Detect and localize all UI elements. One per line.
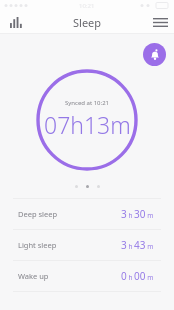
staticText: 07h13m — [44, 109, 131, 140]
staticText: 10:21 — [79, 2, 95, 10]
staticText: Synced at 10:21 — [65, 99, 110, 107]
button[interactable]: Deep sleep — [0, 199, 174, 229]
staticText: 3 h 43 m — [121, 238, 154, 252]
staticText: Deep sleep — [18, 209, 58, 219]
staticText: 3 h 30 m — [121, 207, 154, 221]
staticText: Sleep — [73, 15, 102, 30]
button[interactable]: Wake up — [0, 261, 174, 291]
button[interactable]: Menu — [149, 11, 171, 33]
staticText: Light sleep — [18, 240, 57, 250]
button[interactable]: Light sleep — [0, 230, 174, 260]
staticText: 0 h 00 m — [121, 269, 154, 283]
button[interactable]: Alarm — [143, 43, 166, 66]
button[interactable]: Statistics — [5, 11, 27, 33]
staticText: Wake up — [18, 271, 49, 281]
